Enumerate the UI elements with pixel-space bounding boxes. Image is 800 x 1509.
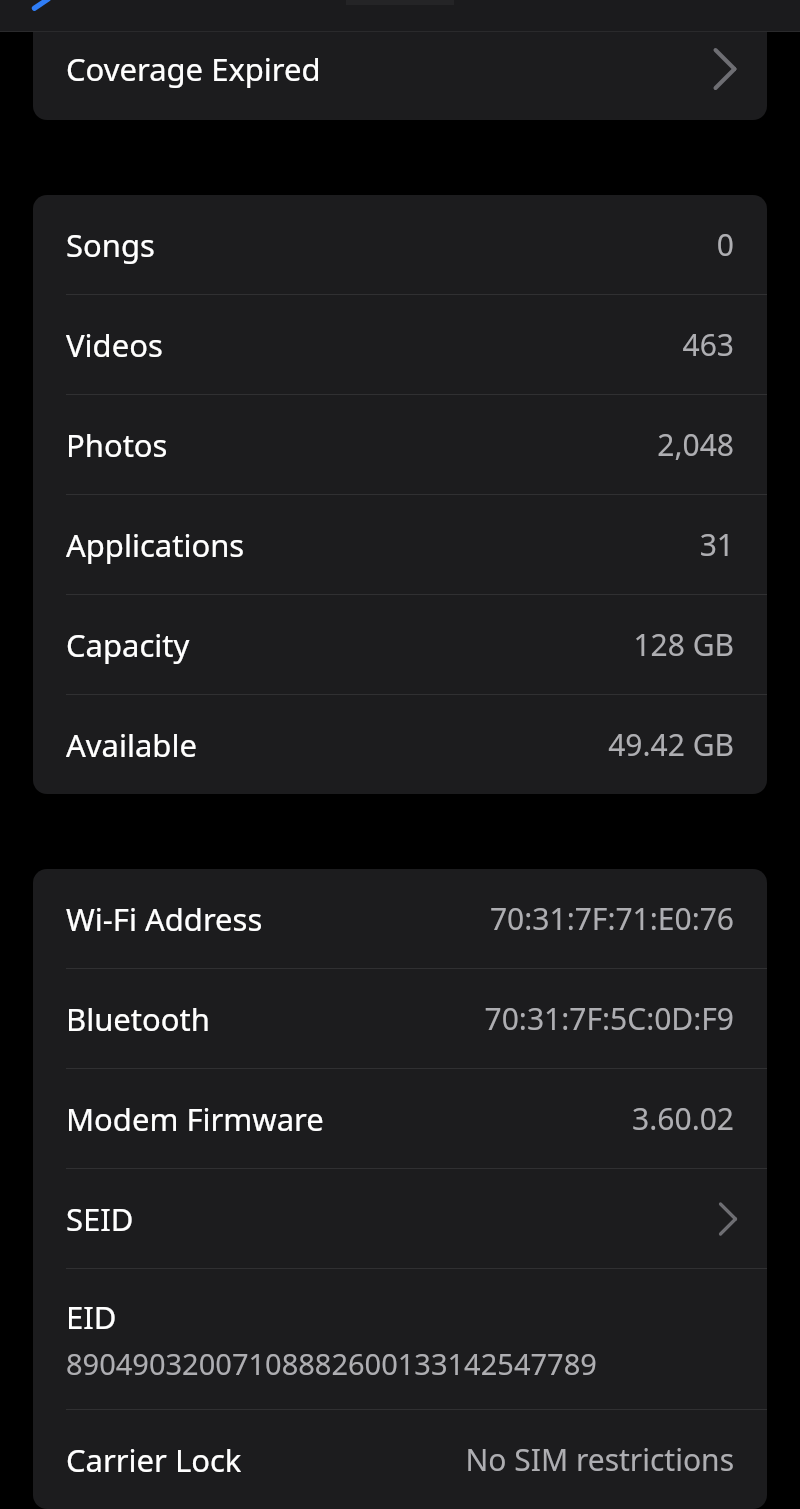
staticText: EID — [66, 1296, 117, 1338]
other: SEID — [713, 1204, 743, 1234]
button[interactable]: Videos — [33, 295, 767, 394]
staticText: Videos — [66, 324, 163, 366]
button[interactable]: Carrier Lock — [33, 1410, 767, 1509]
staticText: 0 — [716, 224, 734, 265]
staticText: 128 GB — [633, 624, 734, 665]
staticText: Songs — [66, 224, 155, 266]
staticText: Capacity — [66, 624, 190, 666]
staticText: 89049032007108882600133142547789 — [66, 1344, 597, 1383]
other: Coverage Expired — [707, 51, 743, 87]
staticText: Carrier Lock — [66, 1439, 242, 1481]
button[interactable]: Songs — [33, 195, 767, 294]
staticText: 70:31:7F:5C:0D:F9 — [484, 998, 734, 1039]
staticText: 3.60.02 — [632, 1098, 734, 1139]
staticText: 49.42 GB — [608, 724, 734, 765]
staticText: No SIM restrictions — [465, 1439, 734, 1480]
staticText: Available — [66, 724, 197, 766]
staticText: Modem Firmware — [66, 1098, 324, 1140]
button[interactable]: Photos — [33, 395, 767, 494]
staticText: Wi-Fi Address — [66, 898, 263, 940]
button[interactable]: Available — [33, 695, 767, 794]
staticText: 31 — [699, 524, 734, 565]
button[interactable]: Applications — [33, 495, 767, 594]
button[interactable]: SEID — [33, 1169, 767, 1268]
staticText: 463 — [682, 324, 734, 365]
staticText: Applications — [66, 524, 245, 566]
staticText: 70:31:7F:71:E0:76 — [489, 898, 734, 939]
button[interactable]: Back — [30, 0, 52, 9]
button[interactable]: Modem Firmware — [33, 1069, 767, 1168]
button[interactable]: Coverage Expired — [33, 32, 767, 120]
staticText: Photos — [66, 424, 168, 466]
staticText: Bluetooth — [66, 998, 210, 1040]
button[interactable]: Bluetooth — [33, 969, 767, 1068]
staticText: SEID — [66, 1198, 134, 1240]
staticText: 2,048 — [657, 424, 734, 465]
button[interactable]: Wi-Fi Address — [33, 869, 767, 968]
button[interactable]: EID — [33, 1269, 767, 1409]
button[interactable]: Capacity — [33, 595, 767, 694]
staticText: Coverage Expired — [66, 48, 321, 90]
